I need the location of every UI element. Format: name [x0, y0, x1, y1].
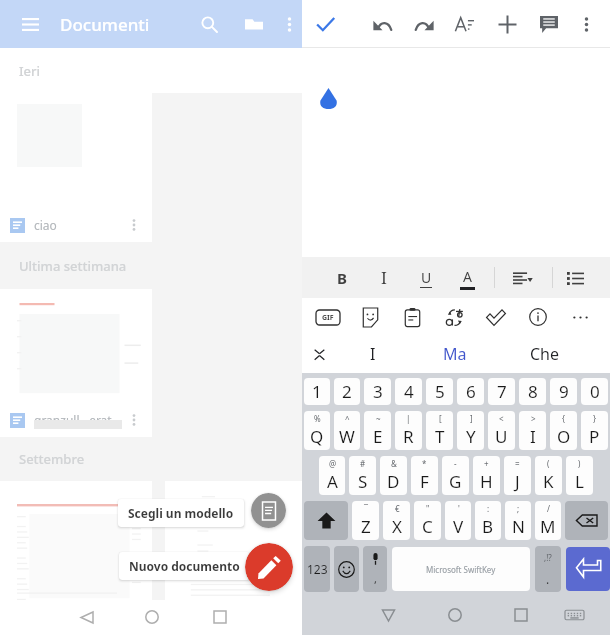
- staticText: =: [515, 458, 520, 469]
- button[interactable]: [165, 481, 302, 600]
- button[interactable]: Stickers: [354, 301, 386, 333]
- button[interactable]: Align: [505, 261, 539, 295]
- button[interactable]: More options: [275, 10, 303, 38]
- button[interactable]: Home: [441, 601, 469, 629]
- button[interactable]: ]: [457, 411, 484, 450]
- button[interactable]: New document: [245, 543, 293, 591]
- button[interactable]: (: [535, 456, 562, 495]
- staticText: G: [449, 470, 462, 493]
- button[interactable]: %: [304, 411, 330, 450]
- button[interactable]: 2: [334, 378, 360, 405]
- button[interactable]: Back: [70, 601, 102, 633]
- button[interactable]: Voice input: [363, 546, 387, 592]
- button[interactable]: /: [535, 501, 561, 540]
- button[interactable]: 5: [426, 378, 453, 405]
- button[interactable]: Punctuation: [535, 546, 561, 592]
- button[interactable]: Editor: [480, 301, 512, 333]
- button[interactable]: Back: [374, 601, 402, 629]
- button[interactable]: More: [564, 301, 596, 333]
- button[interactable]: ^: [334, 411, 360, 450]
- button[interactable]: €: [383, 501, 410, 540]
- button[interactable]: Ma: [410, 335, 500, 373]
- button[interactable]: granzull...erativo: [0, 289, 152, 437]
- button[interactable]: ¯: [352, 501, 379, 540]
- button[interactable]: Info: [522, 301, 554, 333]
- staticText: *: [422, 458, 427, 469]
- staticText: W: [339, 425, 355, 448]
- button[interactable]: More options: [569, 7, 603, 41]
- button[interactable]: Clipboard: [396, 301, 428, 333]
- button[interactable]: Text formatting: [447, 7, 481, 41]
- staticText: 2: [342, 380, 352, 403]
- staticText: ): [578, 458, 581, 469]
- button[interactable]: Scegli un modello: [118, 499, 244, 527]
- button[interactable]: GIF: [312, 301, 344, 333]
- button[interactable]: Home: [136, 601, 168, 633]
- button[interactable]: Insert: [490, 7, 524, 41]
- button[interactable]: Translate: [438, 301, 470, 333]
- button[interactable]: Backspace: [565, 501, 608, 540]
- button[interactable]: Menu: [13, 7, 47, 41]
- button[interactable]: ;: [505, 501, 531, 540]
- button[interactable]: }: [581, 411, 608, 450]
- button[interactable]: [0, 481, 152, 600]
- button[interactable]: =: [504, 456, 531, 495]
- staticText: A: [463, 267, 472, 286]
- button[interactable]: Item options: [122, 408, 146, 432]
- button[interactable]: {: [550, 411, 577, 450]
- button[interactable]: >: [519, 411, 546, 450]
- button[interactable]: Choose template: [251, 493, 286, 528]
- button[interactable]: Recents: [204, 601, 236, 633]
- button[interactable]: I: [336, 335, 410, 373]
- button[interactable]: 1: [304, 378, 330, 405]
- button[interactable]: Che: [500, 335, 590, 373]
- button[interactable]: Enter: [566, 547, 610, 591]
- button[interactable]: 3: [364, 378, 391, 405]
- button[interactable]: Redo: [407, 7, 441, 41]
- button[interactable]: 9: [550, 378, 577, 405]
- button[interactable]: ciao: [0, 93, 152, 242]
- button[interactable]: Folder: [237, 7, 271, 41]
- button[interactable]: ~: [364, 411, 391, 450]
- button[interactable]: 4: [395, 378, 422, 405]
- button[interactable]: Emoji: [334, 546, 359, 592]
- button[interactable]: Undo: [365, 7, 399, 41]
- button[interactable]: 8: [519, 378, 546, 405]
- button[interactable]: Recents: [507, 601, 535, 629]
- button[interactable]: +: [473, 456, 500, 495]
- button[interactable]: Search: [192, 7, 226, 41]
- button[interactable]: Italic: [367, 261, 401, 295]
- staticText: Ieri: [19, 62, 41, 80]
- button[interactable]: 6: [457, 378, 484, 405]
- button[interactable]: ": [414, 501, 441, 540]
- button[interactable]: Underline: [409, 261, 443, 295]
- button[interactable]: Bold: [325, 261, 359, 295]
- staticText: >: [531, 413, 536, 424]
- button[interactable]: Comments: [532, 7, 566, 41]
- button[interactable]: 7: [488, 378, 515, 405]
- button[interactable]: ': [445, 501, 471, 540]
- staticText: ": [426, 503, 430, 514]
- button[interactable]: |: [395, 411, 422, 450]
- button[interactable]: @: [319, 456, 345, 495]
- button[interactable]: Expand predictions: [302, 335, 336, 373]
- button[interactable]: <: [488, 411, 515, 450]
- button[interactable]: #: [349, 456, 376, 495]
- button[interactable]: *: [411, 456, 438, 495]
- button[interactable]: Done: [308, 7, 342, 41]
- staticText: D: [387, 470, 400, 493]
- button[interactable]: Item options: [122, 213, 146, 237]
- button[interactable]: Numbers: [304, 546, 330, 592]
- button[interactable]: Keyboard: [560, 601, 588, 629]
- button[interactable]: [: [426, 411, 453, 450]
- button[interactable]: Shift: [304, 501, 348, 540]
- button[interactable]: List: [558, 261, 592, 295]
- button[interactable]: ): [566, 456, 593, 495]
- button[interactable]: -: [442, 456, 469, 495]
- button[interactable]: Microsoft SwiftKey: [392, 547, 530, 591]
- button[interactable]: &: [380, 456, 407, 495]
- button[interactable]: 0: [581, 378, 608, 405]
- button[interactable]: Text color: [450, 261, 484, 295]
- button[interactable]: :: [475, 501, 501, 540]
- button[interactable]: Nuovo documento: [119, 552, 250, 580]
